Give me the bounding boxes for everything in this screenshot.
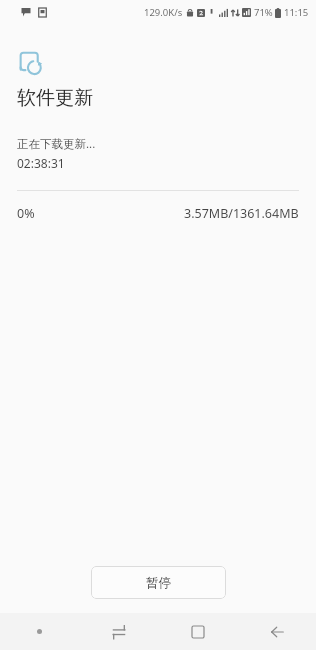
button[interactable]: 暂停 bbox=[91, 566, 226, 599]
button[interactable]: Switch bbox=[79, 613, 158, 650]
staticText: 129.0K/s bbox=[144, 6, 183, 19]
staticText: 11:15 bbox=[284, 6, 309, 19]
staticText: 02:38:31 bbox=[17, 155, 65, 171]
button[interactable]: Hide keyboard bbox=[0, 613, 79, 650]
staticText: 71% bbox=[254, 6, 273, 19]
staticText: 暂停 bbox=[146, 575, 171, 591]
staticText: 软件更新 bbox=[17, 86, 93, 110]
staticText: 0% bbox=[17, 205, 35, 222]
staticText: 正在下载更新... bbox=[17, 136, 96, 152]
staticText: 3.57MB/1361.64MB bbox=[184, 205, 299, 222]
button[interactable]: Recents bbox=[158, 613, 237, 650]
button[interactable]: Back bbox=[237, 613, 316, 650]
